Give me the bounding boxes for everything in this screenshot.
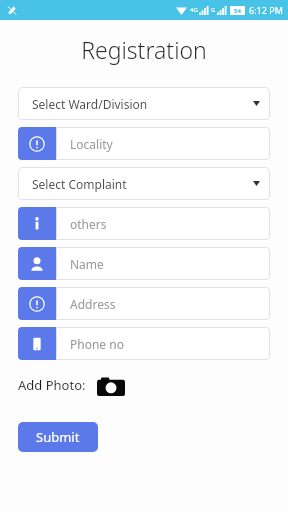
- staticText: Registration: [0, 34, 288, 65]
- button[interactable]: Select Complaint: [18, 167, 270, 200]
- staticText: Submit: [36, 428, 80, 446]
- staticText: G: [211, 6, 216, 14]
- button[interactable]: Select Ward/Division: [18, 87, 270, 120]
- staticText: Add Photo:: [18, 376, 86, 394]
- button[interactable]: Submit: [18, 422, 98, 452]
- button[interactable]: Address: [18, 287, 270, 320]
- staticText: 54: [234, 7, 241, 15]
- staticText: 6:12 PM: [249, 4, 283, 16]
- staticText: Select Ward/Division: [32, 96, 148, 112]
- button[interactable]: Add Photo: [96, 372, 126, 398]
- staticText: others: [70, 216, 107, 232]
- staticText: Address: [70, 296, 116, 312]
- staticText: Phone no: [70, 336, 124, 352]
- button[interactable]: others: [18, 207, 270, 240]
- button[interactable]: Name: [18, 247, 270, 280]
- staticText: 4G: [190, 6, 198, 14]
- button[interactable]: Locality: [18, 127, 270, 160]
- staticText: Select Complaint: [32, 176, 127, 192]
- staticText: Name: [70, 256, 104, 272]
- button[interactable]: Phone no: [18, 327, 270, 360]
- staticText: Locality: [70, 136, 113, 152]
